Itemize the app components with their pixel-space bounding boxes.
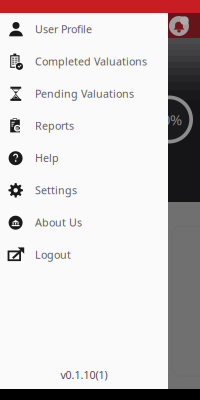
staticText: Help <box>35 151 59 165</box>
button[interactable]: Logout <box>0 238 168 271</box>
staticText: v0.1.10(1) <box>60 368 107 382</box>
button[interactable]: Completed Valuations <box>0 45 168 77</box>
staticText: 0% <box>162 110 182 129</box>
button[interactable]: About Us <box>0 206 168 238</box>
button[interactable]: Reports <box>0 110 168 142</box>
staticText: Logout <box>35 247 71 262</box>
staticText: User Profile <box>35 22 92 36</box>
staticText: Pending Valuations <box>35 86 134 101</box>
staticText: About Us <box>35 215 82 229</box>
button[interactable]: Settings <box>0 174 168 206</box>
staticText: Completed Valuations <box>35 54 147 68</box>
button[interactable]: Help <box>0 142 168 174</box>
button[interactable]: User Profile <box>0 13 168 45</box>
button[interactable]: Notifications <box>169 16 189 36</box>
staticText: Reports <box>35 119 74 133</box>
staticText: Settings <box>35 183 77 197</box>
button[interactable]: Pending Valuations <box>0 77 168 110</box>
